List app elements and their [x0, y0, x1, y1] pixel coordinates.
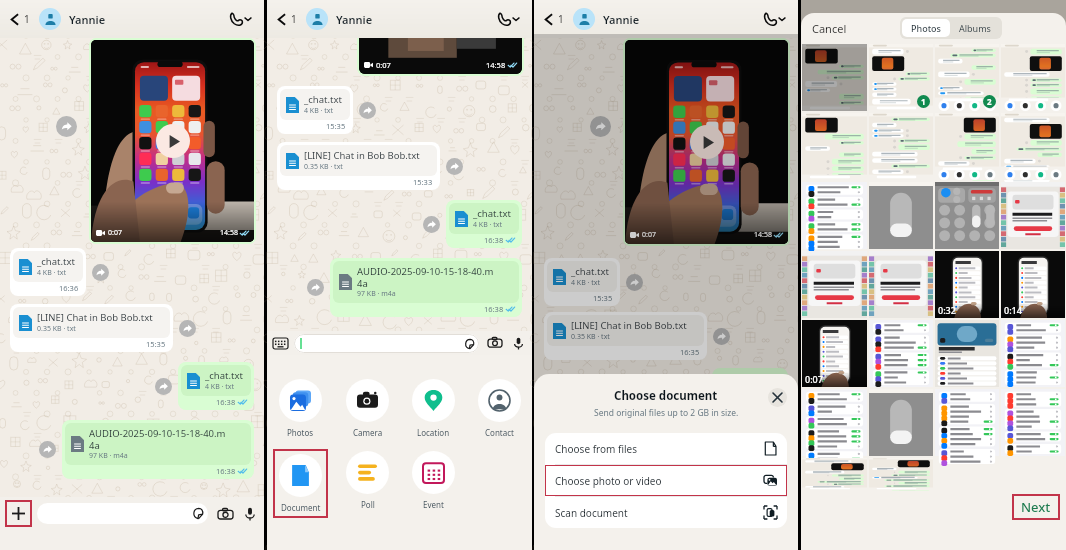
button[interactable]: Forward [446, 158, 463, 175]
button[interactable]: Camera [343, 377, 392, 440]
button[interactable]: Photo 22 [869, 389, 933, 456]
staticText: 14:58 [486, 60, 506, 70]
staticText: 16:38 [484, 304, 504, 314]
button[interactable] [294, 334, 479, 353]
button[interactable]: Forward [179, 320, 196, 337]
button[interactable]: Forward [590, 116, 611, 137]
staticText: 0.35 KB · txt [37, 324, 76, 334]
button[interactable]: Albums [950, 19, 1000, 37]
button[interactable]: Play [91, 40, 254, 242]
button[interactable]: Poll [343, 449, 392, 512]
button[interactable]: Photo 21 [802, 389, 867, 456]
button[interactable]: Forward [56, 116, 77, 137]
button[interactable]: 1 [917, 95, 930, 108]
button[interactable]: AUDIO-2025-09-10-15-18-40.m 4a [62, 420, 254, 479]
staticText: _chat.txt [473, 207, 511, 220]
button[interactable]: Keyboard [273, 338, 288, 349]
button[interactable]: Photo 8 [1001, 113, 1065, 180]
button[interactable]: Forward [359, 102, 376, 119]
button[interactable]: Photo 1 [802, 44, 867, 111]
button[interactable]: Event [409, 449, 458, 512]
button[interactable] [573, 8, 595, 30]
button[interactable]: Photo 25 [802, 458, 867, 490]
button[interactable]: Voice message [241, 505, 259, 523]
button[interactable]: Photo 26 [869, 458, 933, 490]
button[interactable]: Photo 18 [869, 320, 933, 387]
button[interactable]: Close [768, 388, 787, 407]
button[interactable]: Forward [155, 378, 172, 395]
button[interactable]: _chat.txt [446, 200, 522, 248]
button[interactable]: Photo 5 [802, 113, 867, 180]
button[interactable]: Photo 14 [869, 251, 933, 318]
button[interactable]: Photo 23 [935, 389, 999, 456]
button[interactable]: Photo 2 [869, 44, 933, 111]
button[interactable]: Photo 20 [1001, 320, 1065, 387]
button[interactable]: Choose photo or video [545, 465, 787, 496]
button[interactable]: Choose from files [545, 433, 787, 464]
button[interactable]: Scan document [545, 497, 787, 528]
button[interactable]: [LINE] Chat in Bob Bob.txt [10, 304, 173, 352]
button[interactable]: Photo 15 [935, 251, 999, 318]
staticText: 1 [921, 96, 926, 107]
button[interactable]: _chat.txt [178, 362, 254, 410]
button[interactable]: Photos [902, 19, 950, 37]
staticText: 15:33 [413, 177, 433, 187]
button[interactable] [306, 8, 328, 30]
button[interactable]: Photo 3 [935, 44, 999, 111]
staticText: Yannie [69, 12, 106, 27]
button[interactable]: Photo 13 [802, 251, 867, 318]
button[interactable]: 1 [8, 12, 34, 26]
button[interactable]: Voice message [510, 335, 526, 351]
button[interactable]: Call [759, 8, 790, 30]
button[interactable]: Photo 17 [802, 320, 867, 387]
button[interactable]: Play [690, 125, 724, 159]
staticText: 0:07 [376, 60, 391, 70]
button[interactable]: Forward [39, 441, 56, 458]
button[interactable]: Photo 24 [1001, 389, 1065, 456]
button[interactable] [39, 8, 61, 30]
button[interactable]: Forward [92, 264, 109, 281]
button[interactable]: AUDIO-2025-09-10-15-18-40.m 4a [330, 258, 522, 317]
button[interactable]: Play [625, 40, 788, 244]
staticText: 2 [987, 96, 992, 107]
button[interactable]: Call [493, 8, 524, 30]
button[interactable]: Next [1012, 494, 1060, 520]
button[interactable]: _chat.txt [544, 258, 620, 306]
staticText: [LINE] Chat in Bob Bob.txt [571, 319, 687, 332]
button[interactable]: Photo 7 [935, 113, 999, 180]
button[interactable]: _chat.txt [10, 248, 86, 296]
button[interactable]: Cancel [812, 21, 847, 36]
button[interactable]: 2 [983, 95, 996, 108]
button[interactable]: Photo 9 [802, 182, 867, 249]
button[interactable]: 1 [275, 12, 301, 26]
button[interactable]: [LINE] Chat in Bob Bob.txt [544, 312, 707, 360]
staticText: 4 KB · txt [37, 268, 66, 278]
button[interactable]: Contact [475, 377, 524, 440]
button[interactable]: Attach [5, 500, 32, 527]
button[interactable]: 1 [542, 12, 568, 26]
button[interactable]: Photo 12 [1001, 182, 1065, 249]
button[interactable]: Photo 6 [869, 113, 933, 180]
button[interactable]: Photo 19 [935, 320, 999, 387]
button[interactable] [37, 503, 208, 524]
button[interactable]: Location [409, 377, 458, 440]
button[interactable]: Photos [276, 377, 325, 440]
button[interactable]: Call [225, 8, 256, 30]
button[interactable]: Document [276, 452, 325, 515]
button[interactable]: Camera [487, 335, 503, 351]
button[interactable]: Forward [626, 274, 643, 291]
button[interactable]: [LINE] Chat in Bob Bob.txt [277, 142, 440, 190]
button[interactable]: Play [156, 124, 190, 158]
button[interactable]: Camera [216, 505, 234, 523]
button[interactable]: Photo 4 [1001, 44, 1065, 111]
button[interactable]: Photo 11 [935, 182, 999, 249]
staticText: _chat.txt [304, 93, 342, 106]
button[interactable]: Photo 10 [869, 182, 933, 249]
button[interactable]: Forward [713, 328, 730, 345]
button[interactable]: Photo 16 [1001, 251, 1065, 318]
staticText: 0:32 [938, 304, 956, 316]
button[interactable]: _chat.txt [277, 86, 353, 134]
button[interactable]: 0:07 [359, 38, 522, 74]
button[interactable]: Forward [307, 279, 324, 296]
button[interactable]: Forward [423, 216, 440, 233]
